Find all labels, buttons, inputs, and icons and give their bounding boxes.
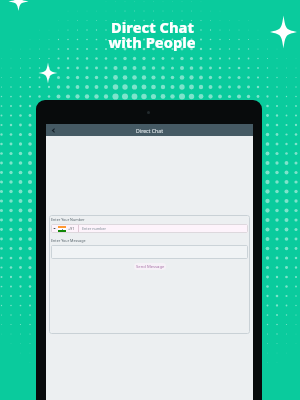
staticText: +91	[68, 226, 75, 231]
button[interactable]: +91	[51, 224, 248, 233]
staticText: Enter Your Number	[51, 217, 85, 222]
button[interactable]	[51, 245, 248, 259]
staticText: Direct Chat	[136, 127, 164, 134]
button[interactable]: Back	[48, 125, 58, 135]
staticText: Enter Your Message	[51, 238, 86, 243]
button[interactable]: Send Message	[134, 263, 166, 270]
staticText: Enter number	[82, 226, 107, 231]
staticText: Direct Chat	[111, 17, 194, 37]
staticText: Send Message	[136, 264, 165, 270]
staticText: with People	[108, 32, 196, 52]
